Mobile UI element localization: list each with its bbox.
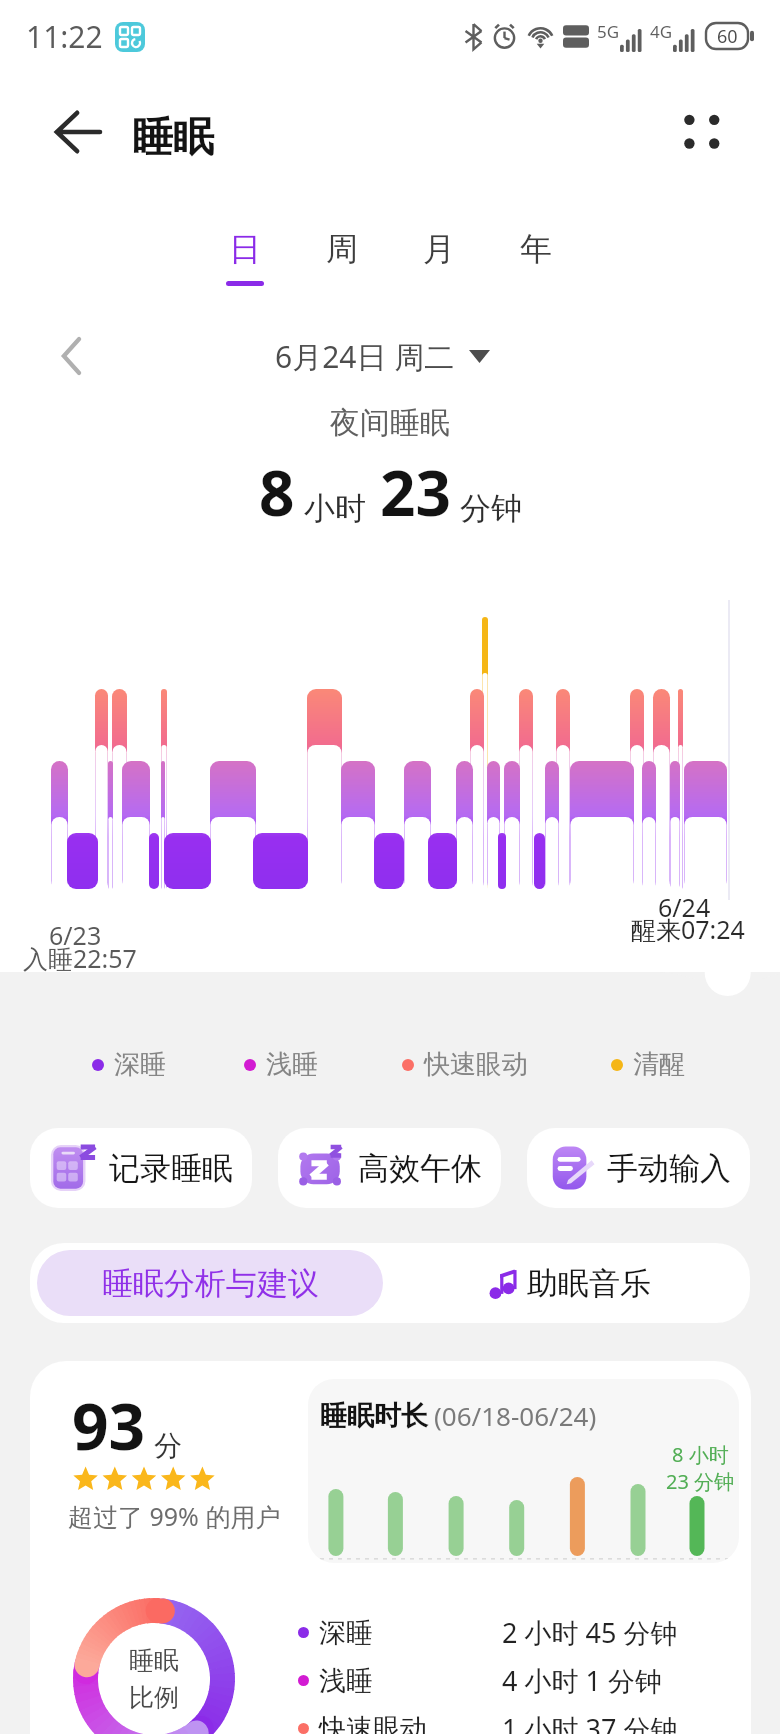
button[interactable]: Back xyxy=(26,92,130,172)
button[interactable]: 清醒 xyxy=(611,1048,685,1081)
button[interactable]: 年 xyxy=(487,229,584,286)
staticText: 93 xyxy=(72,1382,146,1469)
staticText: 2 小时 45 分钟 xyxy=(502,1614,678,1651)
button[interactable]: 记录睡眠 xyxy=(30,1128,252,1208)
staticText: 日 xyxy=(229,229,261,269)
staticText: 年 xyxy=(520,229,552,269)
staticText: 助眠音乐 xyxy=(527,1264,651,1303)
staticText: 快速眼动 xyxy=(424,1048,528,1081)
staticText: 比例 xyxy=(129,1682,179,1713)
staticText: 浅睡 xyxy=(266,1048,318,1081)
staticText: 23 xyxy=(380,450,451,534)
button[interactable]: Previous day xyxy=(46,331,96,381)
staticText: 分 xyxy=(154,1428,182,1463)
button[interactable]: 手动输入 xyxy=(527,1128,750,1208)
staticText: 1 小时 37 分钟 xyxy=(502,1710,678,1734)
staticText: 深睡 xyxy=(114,1048,166,1081)
button[interactable]: More options xyxy=(658,92,746,172)
staticText: 11:22 xyxy=(26,16,103,57)
staticText: 浅睡 xyxy=(319,1664,373,1698)
staticText: 4G xyxy=(650,20,673,43)
staticText: 入睡22:57 xyxy=(23,941,137,975)
staticText: 睡眠 xyxy=(132,112,214,164)
staticText: 6/23 xyxy=(49,918,102,952)
button[interactable]: 日 xyxy=(196,229,293,286)
staticText: 23 分钟 xyxy=(666,1468,735,1495)
button[interactable]: 睡眠分析与建议 xyxy=(37,1250,383,1316)
button[interactable]: 浅睡 xyxy=(244,1048,318,1081)
staticText: 周 xyxy=(326,229,358,269)
button[interactable]: 助眠音乐 xyxy=(390,1243,750,1323)
staticText: 睡眠 xyxy=(129,1645,179,1676)
staticText: 4 小时 1 分钟 xyxy=(502,1662,662,1699)
button[interactable]: 快速眼动 xyxy=(402,1048,528,1081)
staticText: 6月24日 周二 xyxy=(275,336,455,377)
staticText: 快速眼动 xyxy=(319,1712,427,1734)
button[interactable]: 深睡 xyxy=(92,1048,166,1081)
staticText: 深睡 xyxy=(319,1616,373,1650)
staticText: 夜间睡眠 xyxy=(0,404,780,442)
staticText: 高效午休 xyxy=(358,1149,482,1188)
staticText: (06/18-06/24) xyxy=(434,1398,597,1433)
staticText: 睡眠时长 xyxy=(320,1399,428,1433)
staticText: 6/24 xyxy=(658,890,711,924)
staticText: 手动输入 xyxy=(607,1149,731,1188)
staticText: 分钟 xyxy=(460,489,522,528)
staticText: 月 xyxy=(423,229,455,269)
staticText: 超过了 99% 的用户 xyxy=(68,1499,281,1533)
button[interactable]: 月 xyxy=(390,229,487,286)
staticText: 8 xyxy=(259,450,295,534)
staticText: 5G xyxy=(597,20,620,43)
staticText: 记录睡眠 xyxy=(109,1149,233,1188)
staticText: 清醒 xyxy=(633,1048,685,1081)
staticText: 醒来07:24 xyxy=(631,912,745,946)
button[interactable]: 周 xyxy=(293,229,390,286)
staticText: 睡眠分析与建议 xyxy=(102,1264,319,1303)
staticText: 小时 xyxy=(304,489,366,528)
staticText: 60 xyxy=(717,24,738,49)
button[interactable]: 高效午休 xyxy=(278,1128,501,1208)
staticText: 8 小时 xyxy=(672,1441,729,1468)
